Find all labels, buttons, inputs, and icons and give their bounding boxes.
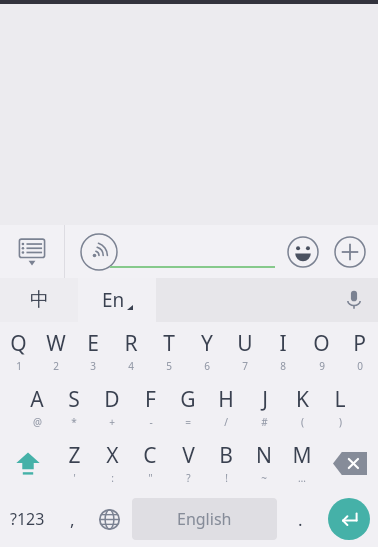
staticText: 9 xyxy=(319,359,325,373)
staticText: , xyxy=(70,508,75,531)
button[interactable]: B xyxy=(207,435,245,491)
button[interactable]: ?123 xyxy=(0,491,55,547)
staticText: ' xyxy=(73,471,76,485)
staticText: L xyxy=(334,385,346,414)
button[interactable]: Enter xyxy=(328,498,370,540)
staticText: I xyxy=(279,329,287,358)
staticText: P xyxy=(353,329,366,358)
button[interactable]: V xyxy=(169,435,207,491)
button[interactable]: Y xyxy=(188,322,226,379)
button[interactable]: X xyxy=(93,435,131,491)
button[interactable]: M xyxy=(283,435,321,491)
staticText: Y xyxy=(201,329,213,358)
button[interactable]: K xyxy=(283,379,321,435)
staticText: ) xyxy=(339,415,342,429)
staticText: G xyxy=(180,385,196,414)
staticText: En xyxy=(102,287,125,313)
staticText: ? xyxy=(186,471,191,485)
staticText: M xyxy=(292,441,312,470)
staticText: S xyxy=(68,385,80,414)
staticText: 8 xyxy=(280,359,286,373)
staticText: 6 xyxy=(204,359,210,373)
staticText: U xyxy=(237,329,253,358)
staticText: H xyxy=(218,385,234,414)
button[interactable]: Z xyxy=(56,435,93,491)
staticText: O xyxy=(313,329,330,358)
staticText: … xyxy=(298,471,306,485)
staticText: V xyxy=(182,441,195,470)
staticText: B xyxy=(219,441,233,470)
button[interactable]: H xyxy=(207,379,245,435)
staticText: T xyxy=(163,329,175,358)
staticText: E xyxy=(87,329,99,358)
button[interactable]: A xyxy=(18,379,55,435)
button[interactable]: En xyxy=(78,278,156,322)
staticText: + xyxy=(109,415,115,429)
button[interactable]: U xyxy=(226,322,264,379)
staticText: - xyxy=(149,415,153,429)
button[interactable]: R xyxy=(112,322,150,379)
staticText: ?123 xyxy=(10,508,45,530)
staticText: 2 xyxy=(53,359,59,373)
staticText: N xyxy=(256,441,272,470)
staticText: * xyxy=(71,415,77,429)
button[interactable]: D xyxy=(93,379,131,435)
button[interactable]: Voice input xyxy=(72,225,125,278)
staticText: F xyxy=(145,385,156,414)
button[interactable]: F xyxy=(131,379,169,435)
staticText: 5 xyxy=(166,359,172,373)
staticText: K xyxy=(296,385,309,414)
staticText: @ xyxy=(33,415,42,429)
button[interactable]: English xyxy=(132,498,277,540)
button[interactable]: L xyxy=(321,379,359,435)
button[interactable]: . xyxy=(281,491,319,547)
button[interactable]: E xyxy=(74,322,112,379)
staticText: ( xyxy=(301,415,304,429)
button[interactable]: Backspace xyxy=(321,435,378,491)
staticText: A xyxy=(30,385,44,414)
button[interactable]: N xyxy=(245,435,283,491)
button[interactable]: More options xyxy=(325,227,375,277)
staticText: " xyxy=(148,471,153,485)
button[interactable]: I xyxy=(264,322,302,379)
staticText: C xyxy=(143,441,157,470)
button[interactable]: Shift xyxy=(0,435,56,491)
button[interactable]: O xyxy=(302,322,340,379)
staticText: 0 xyxy=(357,359,363,373)
staticText: English xyxy=(177,508,232,530)
staticText: = xyxy=(185,415,191,429)
staticText: 1 xyxy=(16,359,22,373)
button[interactable]: S xyxy=(55,379,93,435)
button[interactable]: Emoji xyxy=(278,227,328,277)
button[interactable]: J xyxy=(245,379,283,435)
button[interactable]: G xyxy=(169,379,207,435)
button[interactable]: , xyxy=(55,491,90,547)
button[interactable]: T xyxy=(150,322,188,379)
staticText: 4 xyxy=(128,359,134,373)
button[interactable]: W xyxy=(37,322,74,379)
button[interactable]: Clipboard xyxy=(8,225,56,278)
staticText: R xyxy=(124,329,138,358)
staticText: D xyxy=(104,385,120,414)
staticText: 7 xyxy=(242,359,248,373)
button[interactable]: C xyxy=(131,435,169,491)
staticText: 3 xyxy=(90,359,96,373)
staticText: 中 xyxy=(30,288,49,312)
staticText: X xyxy=(106,441,119,470)
button[interactable]: Q xyxy=(0,322,37,379)
staticText: # xyxy=(261,415,268,429)
button[interactable]: Voice typing xyxy=(330,278,378,322)
staticText: ! xyxy=(225,471,228,485)
staticText: Q xyxy=(10,329,27,358)
button[interactable]: Change language xyxy=(90,491,128,547)
staticText: ~ xyxy=(261,471,267,485)
staticText: / xyxy=(224,415,228,429)
staticText: . xyxy=(298,508,303,531)
button[interactable]: 中 xyxy=(0,278,78,322)
staticText: W xyxy=(46,329,66,358)
staticText: Z xyxy=(68,441,81,470)
staticText: : xyxy=(111,471,114,485)
button[interactable]: P xyxy=(340,322,378,379)
staticText: J xyxy=(262,385,268,414)
